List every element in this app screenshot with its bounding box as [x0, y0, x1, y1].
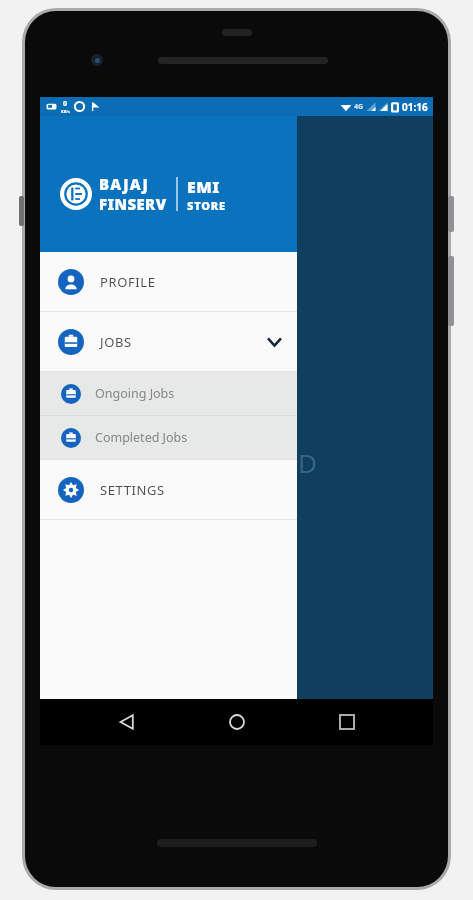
staticText: PROFILE [100, 273, 156, 291]
button[interactable]: Completed Jobs [40, 416, 297, 459]
staticText: Ongoing Jobs [95, 385, 175, 402]
staticText: EMI [187, 176, 220, 198]
button[interactable]: PROFILE [40, 252, 297, 311]
button[interactable]: Ongoing Jobs [40, 372, 297, 415]
staticText: 4G [354, 102, 364, 112]
staticText: 0 [63, 99, 68, 109]
staticText: STORE [187, 198, 226, 213]
button[interactable]: Home [213, 699, 261, 745]
staticText: JOBS [100, 333, 132, 351]
staticText: Completed Jobs [95, 429, 188, 446]
button[interactable]: Recent apps [323, 699, 371, 745]
staticText: D [298, 445, 317, 480]
staticText: SETTINGS [100, 481, 165, 499]
button[interactable]: Back [102, 699, 150, 745]
staticText: FINSERV [99, 194, 167, 214]
button[interactable]: SETTINGS [40, 460, 297, 519]
staticText: 01:16 [402, 100, 428, 114]
button[interactable]: JOBS [40, 312, 297, 371]
staticText: BAJAJ [99, 174, 149, 194]
staticText: KB/s [61, 109, 70, 114]
